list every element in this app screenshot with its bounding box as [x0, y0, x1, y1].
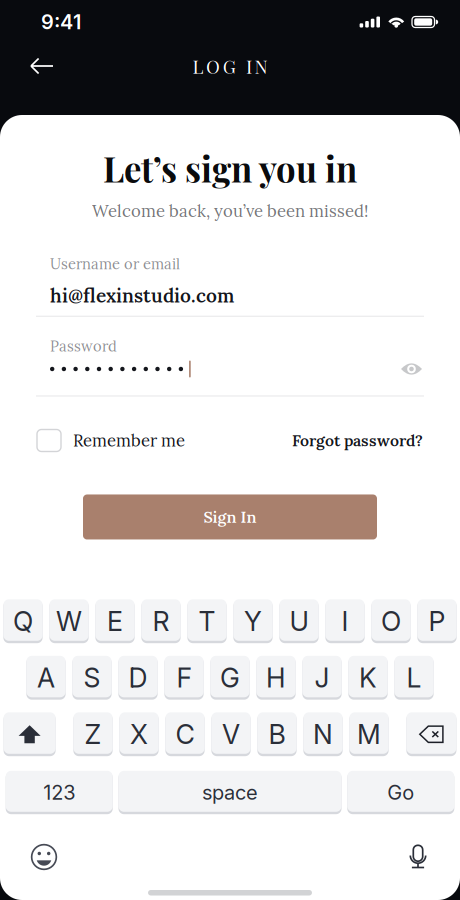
button[interactable]: Sign In — [83, 494, 377, 539]
button[interactable]: Z — [73, 713, 113, 755]
button[interactable]: Back — [0, 49, 68, 83]
staticText: L — [406, 662, 421, 694]
staticText: D — [128, 662, 147, 694]
button[interactable]: X — [119, 713, 159, 755]
button[interactable]: V — [211, 713, 251, 755]
staticText: K — [359, 662, 377, 694]
staticText: Forgot password? — [292, 430, 423, 450]
button[interactable]: W — [49, 600, 89, 642]
staticText: E — [107, 605, 123, 637]
staticText: B — [268, 718, 285, 750]
button[interactable]: 123 — [6, 772, 113, 813]
staticText: Go — [387, 780, 414, 805]
staticText: Welcome back, you’ve been missed! — [92, 200, 368, 221]
button[interactable]: I — [325, 600, 365, 642]
button[interactable]: Forgot password? — [292, 430, 423, 450]
staticText: LOG IN — [192, 54, 267, 78]
button[interactable]: T — [187, 600, 227, 642]
staticText: 9:41 — [41, 10, 81, 34]
button[interactable]: Delete — [406, 713, 456, 755]
staticText: O — [381, 605, 401, 637]
button[interactable]: Q — [3, 600, 43, 642]
button[interactable]: Go — [347, 772, 454, 813]
button[interactable]: E — [95, 600, 135, 642]
button[interactable]: A — [26, 657, 66, 698]
button[interactable]: J — [302, 657, 342, 698]
button[interactable]: B — [257, 713, 297, 755]
staticText: Username or email — [50, 254, 180, 273]
staticText: M — [357, 718, 381, 750]
button[interactable]: O — [371, 600, 411, 642]
staticText: X — [130, 718, 148, 750]
staticText: Remember me — [73, 430, 185, 451]
staticText: G — [220, 662, 240, 694]
staticText: P — [428, 605, 445, 637]
staticText: Let’s sign you in — [103, 145, 357, 191]
button[interactable]: Remember me — [37, 429, 185, 451]
button[interactable]: S — [72, 657, 112, 698]
button[interactable]: Show password — [401, 362, 424, 376]
button[interactable]: L — [394, 657, 434, 698]
button[interactable]: Y — [233, 600, 273, 642]
staticText: F — [176, 662, 191, 694]
button[interactable]: Dictate — [405, 842, 431, 872]
button[interactable]: M — [349, 713, 389, 755]
staticText: U — [289, 605, 308, 637]
button[interactable]: P — [417, 600, 457, 642]
staticText: W — [56, 605, 82, 637]
staticText: Password — [50, 337, 117, 355]
staticText: T — [198, 605, 215, 637]
button[interactable]: G — [210, 657, 250, 698]
button[interactable]: Shift — [4, 713, 56, 755]
button[interactable]: C — [165, 713, 205, 755]
staticText: C — [175, 718, 194, 750]
button[interactable]: N — [303, 713, 343, 755]
staticText: N — [313, 718, 333, 750]
button[interactable]: Emoji keyboard — [29, 842, 59, 872]
staticText: R — [152, 605, 169, 637]
button[interactable]: H — [256, 657, 296, 698]
button[interactable]: K — [348, 657, 388, 698]
staticText: Z — [84, 718, 101, 750]
button[interactable]: U — [279, 600, 319, 642]
staticText: H — [266, 662, 286, 694]
staticText: S — [83, 662, 100, 694]
staticText: V — [222, 718, 240, 750]
staticText: Sign In — [203, 507, 256, 527]
staticText: I — [341, 605, 348, 637]
staticText: J — [314, 662, 329, 694]
staticText: Y — [244, 605, 262, 637]
button[interactable]: D — [118, 657, 158, 698]
button[interactable]: R — [141, 600, 181, 642]
staticText: A — [37, 662, 55, 694]
staticText: space — [202, 780, 258, 805]
button[interactable]: space — [118, 772, 341, 813]
button[interactable]: F — [164, 657, 204, 698]
staticText: Q — [13, 605, 33, 637]
staticText: 123 — [43, 780, 75, 805]
staticText: hi@flexinstudio.com — [50, 283, 234, 308]
